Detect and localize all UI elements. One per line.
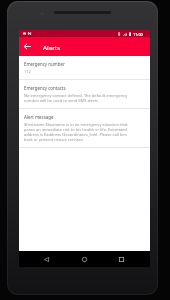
staticText: Alert message <box>24 114 54 120</box>
button[interactable]: Alert message <box>19 109 150 147</box>
button[interactable]: Home <box>74 251 94 267</box>
button[interactable]: Emergency number <box>19 56 150 79</box>
button[interactable]: Back <box>19 38 36 55</box>
button[interactable]: Recent apps <box>111 251 131 267</box>
staticText: Emergency number <box>24 61 65 67</box>
button[interactable]: Emergency contacts <box>19 80 150 108</box>
staticText: Emergency contacts <box>24 85 66 91</box>
staticText: No emergency contact defined. The defaul… <box>24 93 130 103</box>
staticText: 112 <box>24 69 31 74</box>
staticText: 11:00 <box>133 32 143 37</box>
button[interactable]: Back <box>36 251 56 267</box>
staticText: $firstname $lastname is in an emergency … <box>24 122 130 142</box>
staticText: Alerts <box>43 43 61 51</box>
